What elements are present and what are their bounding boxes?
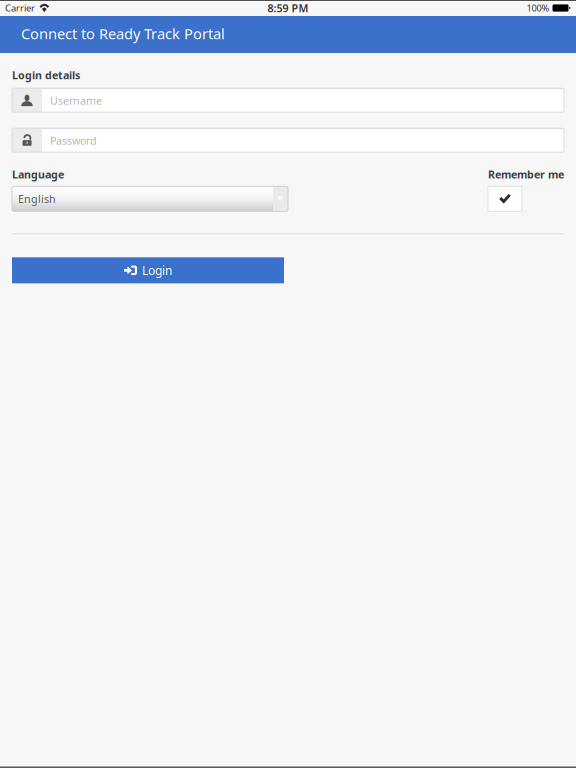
staticText: Carrier xyxy=(5,2,35,14)
staticText: Password xyxy=(50,134,97,148)
button[interactable]: Remember me xyxy=(488,186,522,211)
staticText: Connect to Ready Track Portal xyxy=(21,24,225,43)
staticText: Username xyxy=(50,94,102,108)
staticText: English xyxy=(18,192,56,206)
staticText: Login details xyxy=(12,68,80,82)
staticText: 100% xyxy=(526,2,549,14)
staticText: Remember me xyxy=(488,167,564,181)
staticText: 8:59 PM xyxy=(267,1,308,15)
staticText: Login xyxy=(142,262,172,278)
button[interactable]: Language: English xyxy=(12,186,288,211)
staticText: Language xyxy=(12,167,64,181)
button[interactable]: Login xyxy=(12,257,284,283)
